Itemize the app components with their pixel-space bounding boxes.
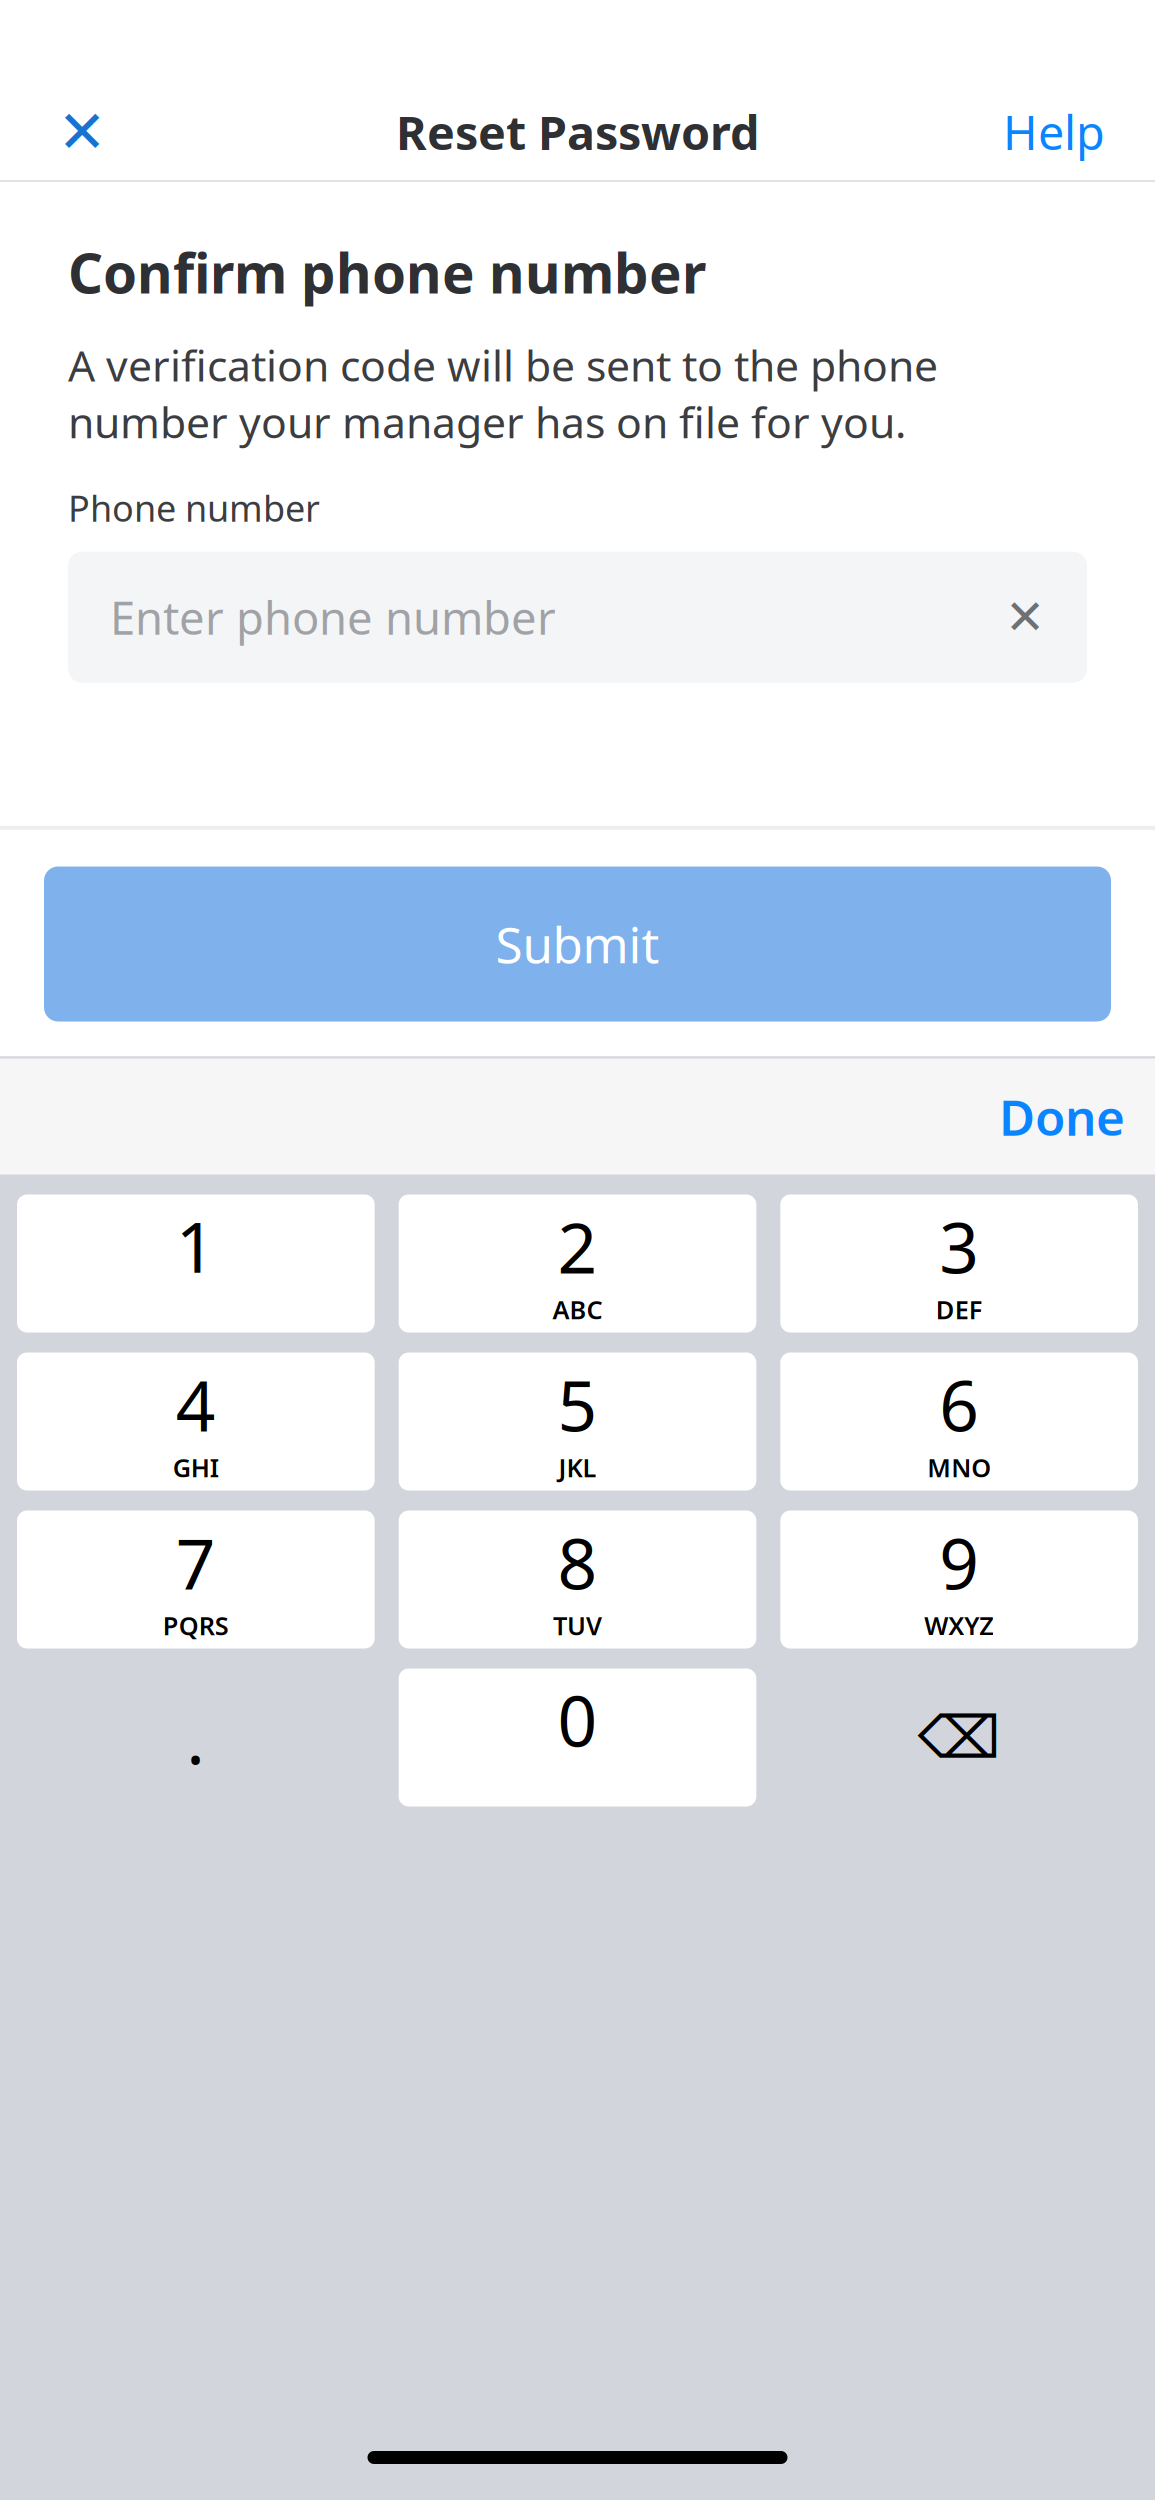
staticText: WXYZ <box>924 1609 994 1642</box>
button[interactable]: 8 <box>399 1510 756 1648</box>
staticText: 1 <box>176 1200 216 1292</box>
staticText: ✕ <box>1005 590 1045 644</box>
staticText: 0 <box>557 1674 597 1766</box>
staticText: 3 <box>939 1201 979 1293</box>
staticText: 5 <box>557 1359 597 1451</box>
staticText: 4 <box>176 1359 216 1451</box>
staticText: JKL <box>558 1451 596 1484</box>
button[interactable]: Period <box>17 1668 375 1806</box>
button[interactable]: 0 <box>399 1668 756 1806</box>
staticText: 7 <box>176 1517 216 1609</box>
staticText: GHI <box>173 1451 219 1484</box>
staticText: A verification code will be sent to the … <box>68 337 938 450</box>
button[interactable]: Close <box>40 86 124 178</box>
button[interactable]: 3 <box>780 1194 1138 1332</box>
staticText: . <box>186 1691 205 1784</box>
staticText: Reset Password <box>396 101 759 163</box>
staticText: PQRS <box>163 1609 229 1642</box>
staticText: Submit <box>495 911 659 977</box>
button[interactable]: 6 <box>780 1352 1138 1490</box>
staticText: Enter phone number <box>110 587 556 647</box>
staticText: Phone number <box>68 484 320 532</box>
staticText: ✕ <box>57 99 106 165</box>
staticText: 8 <box>557 1517 597 1609</box>
button[interactable]: 7 <box>17 1510 375 1648</box>
button[interactable]: 4 <box>17 1352 375 1490</box>
button[interactable]: 9 <box>780 1510 1138 1648</box>
button[interactable]: Enter phone number <box>68 552 1087 683</box>
button[interactable]: Delete <box>780 1668 1138 1806</box>
staticText: MNO <box>927 1451 991 1484</box>
staticText: ABC <box>552 1293 602 1326</box>
button[interactable]: 5 <box>399 1352 756 1490</box>
button[interactable]: 1 <box>17 1194 375 1332</box>
staticText: ⌫ <box>918 1704 1001 1771</box>
staticText: Confirm phone number <box>68 236 706 309</box>
button[interactable]: 2 <box>399 1194 756 1332</box>
button[interactable]: Done <box>969 1058 1155 1174</box>
button[interactable]: Help <box>993 86 1115 178</box>
staticText: Done <box>999 1084 1125 1149</box>
staticText: 2 <box>557 1201 597 1293</box>
staticText: 9 <box>939 1517 979 1609</box>
staticText: TUV <box>553 1609 602 1642</box>
staticText: Help <box>1003 101 1105 163</box>
button[interactable]: Submit <box>44 866 1111 1021</box>
staticText: DEF <box>936 1293 983 1326</box>
staticText: 6 <box>939 1359 979 1451</box>
